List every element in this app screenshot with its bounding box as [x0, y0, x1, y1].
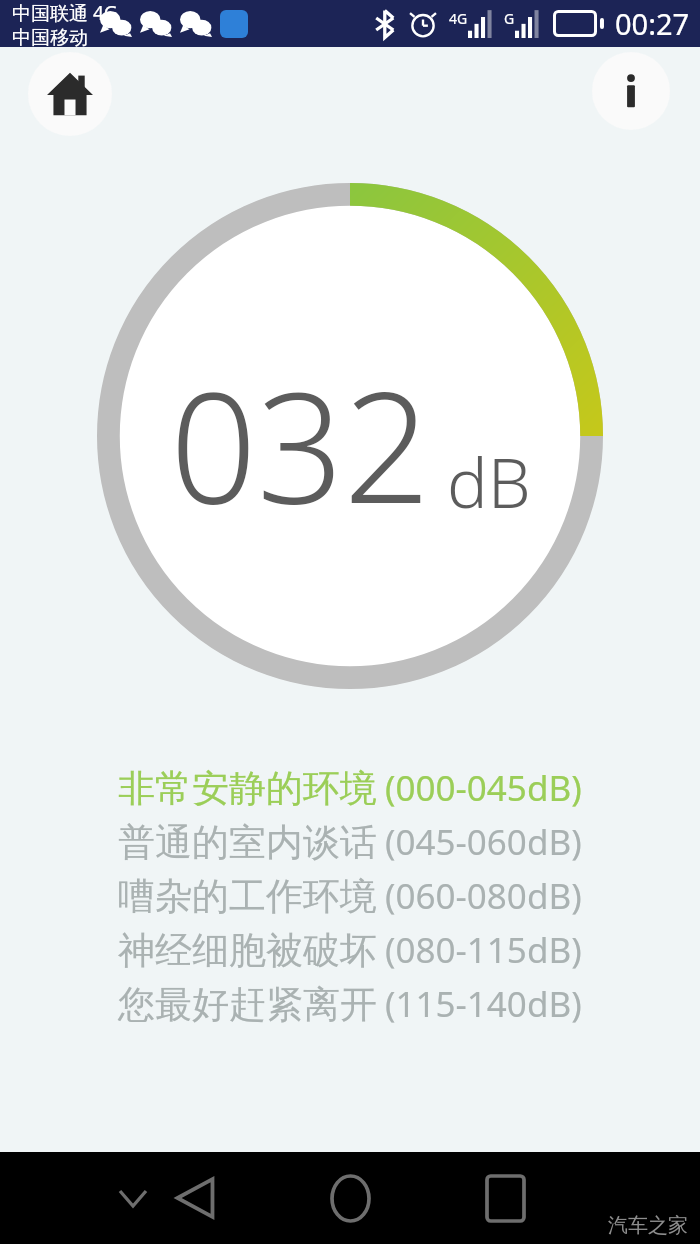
staticText: 普通的室内谈话 — [118, 819, 377, 866]
staticText: 4G — [449, 9, 468, 28]
button[interactable]: Home — [28, 52, 112, 136]
staticText: 嘈杂的工作环境 — [118, 873, 377, 920]
staticText: (080-115dB) — [385, 926, 582, 974]
staticText: (045-060dB) — [385, 818, 582, 866]
staticText: (115-140dB) — [385, 980, 582, 1028]
staticText: 00:27 — [615, 4, 690, 43]
button[interactable]: 您最好赶紧离开 — [0, 977, 700, 1031]
button[interactable]: Hide navigation bar — [105, 1170, 161, 1226]
staticText: 中国联通 4G — [12, 0, 118, 26]
staticText: (000-045dB) — [385, 764, 582, 812]
staticText: G — [504, 9, 515, 28]
button[interactable]: Home — [318, 1166, 382, 1230]
button[interactable]: 非常安静的环境 — [0, 761, 700, 815]
staticText: 汽车之家 — [608, 1213, 688, 1238]
staticText: 您最好赶紧离开 — [118, 981, 377, 1028]
staticText: 中国移动 — [12, 26, 88, 47]
button[interactable]: 普通的室内谈话 — [0, 815, 700, 869]
staticText: (060-080dB) — [385, 872, 582, 920]
staticText: 非常安静的环境 — [118, 765, 377, 812]
staticText: 032 — [170, 341, 431, 548]
button[interactable]: Back — [163, 1166, 227, 1230]
button[interactable]: Recent apps — [473, 1166, 537, 1230]
staticText: dB — [447, 435, 531, 528]
button[interactable]: Info — [592, 52, 670, 130]
button[interactable]: 嘈杂的工作环境 — [0, 869, 700, 923]
staticText: 神经细胞被破坏 — [118, 927, 377, 974]
button[interactable]: 神经细胞被破坏 — [0, 923, 700, 977]
